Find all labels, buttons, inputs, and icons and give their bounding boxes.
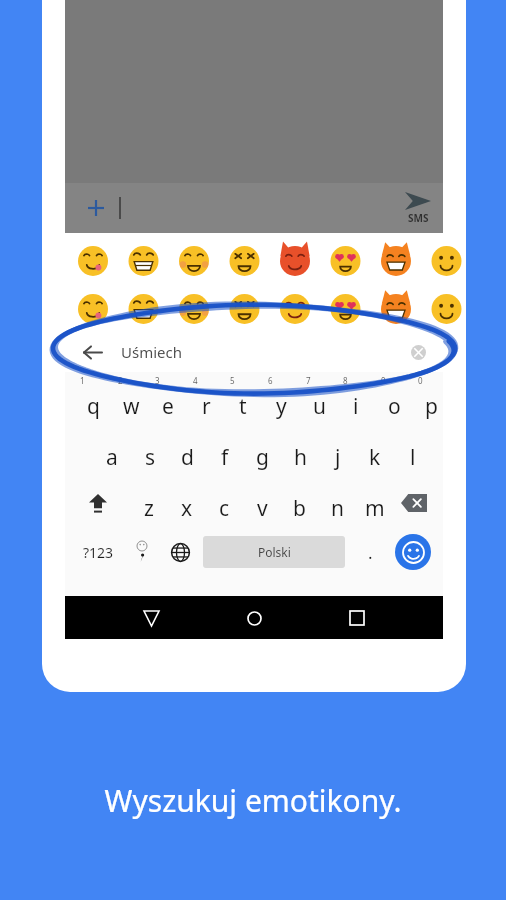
button[interactable]: u <box>302 386 336 426</box>
staticText: w <box>123 392 140 421</box>
button[interactable]: v <box>245 488 279 528</box>
button[interactable]: i <box>339 386 373 426</box>
staticText: o <box>388 392 401 421</box>
button[interactable]: Change language <box>161 532 199 572</box>
button[interactable]: w <box>114 386 148 426</box>
staticText: r <box>202 392 211 421</box>
staticText: k <box>369 443 381 472</box>
staticText: 9 <box>381 375 386 386</box>
button[interactable]: n <box>320 488 354 528</box>
staticText: SMS <box>408 211 429 225</box>
staticText: 1 <box>80 375 85 386</box>
button[interactable]: Emoji <box>395 534 431 570</box>
staticText: m <box>365 494 385 523</box>
button[interactable]: Back <box>77 337 107 367</box>
button[interactable]: e <box>151 386 185 426</box>
staticText: 3 <box>155 375 160 386</box>
button[interactable]: t <box>226 386 260 426</box>
staticText: b <box>293 494 306 523</box>
button[interactable]: ?123 <box>75 532 121 572</box>
button[interactable]: k <box>358 437 392 477</box>
staticText: n <box>331 494 344 523</box>
button[interactable]: d <box>170 437 204 477</box>
staticText: 0 <box>418 375 423 386</box>
staticText: v <box>257 494 268 523</box>
staticText: s <box>145 443 156 472</box>
staticText: . <box>368 541 373 564</box>
button[interactable]: Polski <box>203 536 345 568</box>
button[interactable]: f <box>208 437 242 477</box>
button[interactable]: y <box>264 386 298 426</box>
staticText: y <box>276 392 287 421</box>
staticText: 7 <box>306 375 311 386</box>
staticText: p <box>425 392 438 421</box>
staticText: i <box>353 392 359 421</box>
staticText: q <box>87 392 100 421</box>
staticText: Uśmiech <box>121 342 182 362</box>
button[interactable]: Shift <box>79 484 117 522</box>
button[interactable]: q <box>76 386 110 426</box>
button[interactable]: Back <box>65 331 443 372</box>
staticText: Wyszukuj emotikony. <box>0 780 506 821</box>
staticText: 2 <box>118 375 123 386</box>
button[interactable]: Back <box>131 598 171 638</box>
staticText: t <box>239 392 247 421</box>
staticText: Polski <box>258 544 291 560</box>
staticText: a <box>106 443 118 472</box>
staticText: 4 <box>193 375 198 386</box>
button[interactable]: m <box>358 488 392 528</box>
button[interactable]: Clear <box>405 339 431 365</box>
button[interactable]: Add attachment <box>77 189 115 227</box>
staticText: l <box>410 443 416 472</box>
staticText: 5 <box>230 375 235 386</box>
button[interactable]: g <box>245 437 279 477</box>
staticText: u <box>313 392 326 421</box>
button[interactable]: o <box>377 386 411 426</box>
button[interactable]: x <box>170 488 204 528</box>
staticText: j <box>335 443 341 472</box>
button[interactable]: z <box>132 488 166 528</box>
button[interactable]: r <box>189 386 223 426</box>
staticText: f <box>221 443 229 472</box>
button[interactable]: l <box>396 437 430 477</box>
button[interactable]: p <box>414 386 448 426</box>
button[interactable]: j <box>321 437 355 477</box>
button[interactable]: s <box>133 437 167 477</box>
staticText: 6 <box>268 375 273 386</box>
button[interactable]: Send SMS <box>405 192 431 225</box>
staticText: 8 <box>343 375 348 386</box>
staticText: z <box>144 494 154 523</box>
staticText: h <box>294 443 307 472</box>
staticText: e <box>162 392 174 421</box>
button[interactable]: c <box>207 488 241 528</box>
staticText: x <box>181 494 193 523</box>
staticText: c <box>219 494 230 523</box>
staticText: d <box>181 443 194 472</box>
button[interactable]: h <box>283 437 317 477</box>
button[interactable]: b <box>282 488 316 528</box>
button[interactable]: Recents <box>337 598 377 638</box>
button[interactable]: Home <box>234 598 274 638</box>
staticText: g <box>256 443 269 472</box>
staticText: ?123 <box>83 543 114 562</box>
button[interactable]: . <box>351 532 389 572</box>
button[interactable]: Comma and emoji <box>123 532 161 572</box>
button[interactable]: Backspace <box>395 484 433 522</box>
button[interactable]: a <box>95 437 129 477</box>
